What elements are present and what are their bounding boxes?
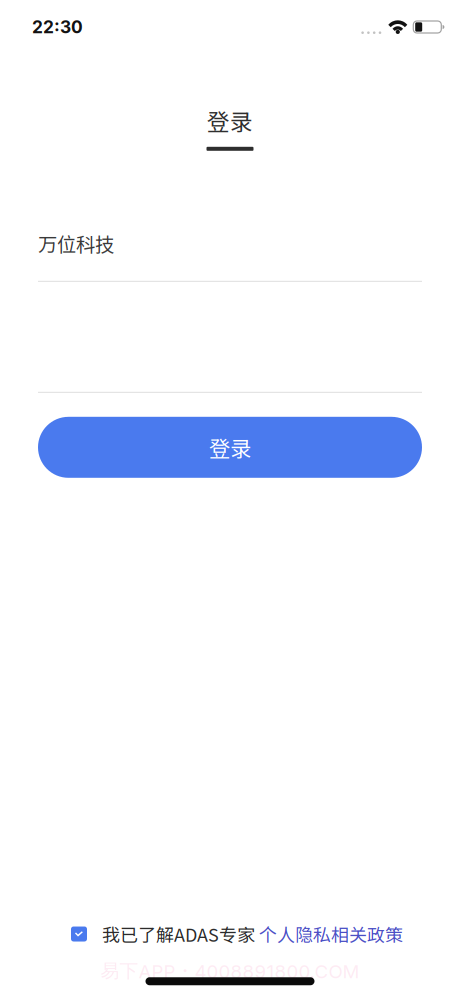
staticText: 22:30	[32, 16, 83, 37]
staticText: 个人隐私相关政策	[259, 921, 403, 947]
staticText: 登录	[209, 432, 251, 463]
staticText: 我已了解ADAS专家	[102, 921, 259, 947]
button[interactable]: 登录	[38, 417, 422, 478]
staticText: 万位科技	[38, 229, 114, 257]
button[interactable]: 我已了解ADAS专家	[64, 922, 396, 946]
staticText: 易下APP・4008891800.COM	[100, 959, 359, 983]
staticText: 登录	[207, 104, 253, 137]
